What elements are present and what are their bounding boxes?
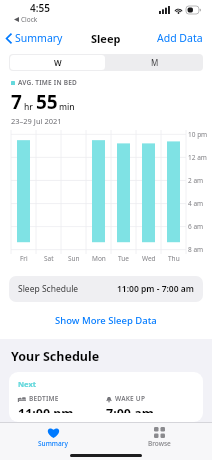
staticText: Clock <box>21 15 38 24</box>
button[interactable]: Browse <box>106 423 212 451</box>
staticText: Wed <box>142 254 156 263</box>
staticText: Tue <box>118 254 129 263</box>
staticText: 10 pm <box>188 130 208 139</box>
staticText: 2 am <box>188 176 204 185</box>
staticText: Sun <box>68 254 80 263</box>
staticText: Thu <box>168 254 180 263</box>
staticText: W <box>54 57 62 68</box>
staticText: 11:00 pm <box>18 405 74 413</box>
staticText: min <box>59 101 75 113</box>
staticText: 23–29 Jul 2021 <box>11 116 62 126</box>
staticText: 6 am <box>188 222 204 231</box>
staticText: 7:00 am <box>106 405 154 413</box>
staticText: Add Data <box>157 31 203 45</box>
staticText: 11:00 pm - 7:00 am <box>117 283 194 295</box>
button[interactable]: Summary <box>0 423 106 451</box>
button[interactable]: M <box>106 54 203 71</box>
staticText: Show More Sleep Data <box>55 314 157 327</box>
staticText: M <box>151 57 159 68</box>
staticText: 4:55 <box>30 1 50 15</box>
button[interactable]: Show More Sleep Data <box>47 312 165 329</box>
button[interactable]: Add Data <box>148 28 212 48</box>
staticText: Browse <box>148 439 171 448</box>
staticText: Mon <box>92 254 106 263</box>
staticText: 12 am <box>188 153 207 162</box>
staticText: Summary <box>38 439 68 448</box>
staticText: hr <box>24 101 33 113</box>
staticText: Fri <box>20 254 28 263</box>
button[interactable]: W <box>10 55 105 70</box>
staticText: Your Schedule <box>11 348 100 365</box>
button[interactable]: Next <box>9 372 203 422</box>
staticText: 55 <box>36 89 58 115</box>
staticText: Next <box>18 379 37 389</box>
button[interactable]: Summary <box>0 28 69 48</box>
button[interactable]: Sleep Schedule <box>9 276 203 302</box>
staticText: 7 <box>11 89 22 115</box>
staticText: Summary <box>15 31 63 45</box>
staticText: BEDTIME <box>29 394 59 403</box>
staticText: Sleep Schedule <box>18 283 79 295</box>
staticText: WAKE UP <box>115 394 146 403</box>
staticText: 8 am <box>188 245 204 254</box>
staticText: Sat <box>44 254 54 263</box>
staticText: Sleep <box>91 31 121 46</box>
staticText: 4 am <box>188 199 204 208</box>
staticText: AVG. TIME IN BED <box>18 78 77 87</box>
